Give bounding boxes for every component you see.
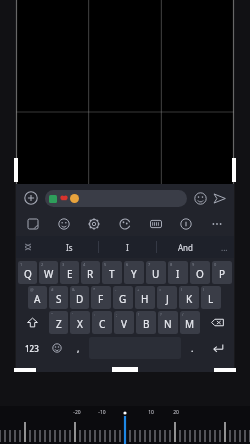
staticText: L [208,292,214,306]
button[interactable]: 5 [102,261,122,284]
button[interactable]: / [180,311,200,334]
button[interactable]: Shift [18,311,47,334]
button[interactable]: Theme [114,213,136,235]
button[interactable]: 4 [81,261,100,284]
button[interactable]: ! [136,311,156,334]
staticText: Y [131,267,137,281]
staticText: O [196,267,204,281]
button[interactable]: 9 [190,261,210,284]
staticText: 10 [148,409,154,416]
button[interactable]: Is [40,236,98,258]
button[interactable]: 6 [124,261,144,284]
button[interactable]: Emoji [53,213,75,235]
button[interactable]: ? [158,311,178,334]
button[interactable]: " [49,311,68,334]
button[interactable]: * [91,286,111,309]
staticText: I [176,267,180,281]
staticText: A [34,292,41,306]
staticText: . [191,342,194,354]
staticText: T [109,267,115,281]
button[interactable]: + [135,286,155,309]
button[interactable]: - [113,286,133,309]
button[interactable]: More options [206,213,228,235]
button[interactable]: Stickers [22,213,44,235]
button[interactable]: Emoji [191,189,209,207]
staticText: 123 [25,343,39,354]
staticText: ( [181,287,183,292]
button[interactable]: Expand suggestions [16,236,40,258]
staticText: * [93,287,96,292]
button[interactable]: More suggestions [214,236,234,258]
staticText: 2 [41,262,44,267]
button[interactable]: ; [114,311,134,334]
button[interactable]: = [157,286,177,309]
staticText: : [94,312,96,317]
staticText: 7 [148,262,151,267]
staticText: 0 [214,262,217,267]
staticText: J [166,292,169,306]
button[interactable]: ( [179,286,199,309]
staticText: 20 [173,409,179,416]
staticText: R [87,267,94,281]
button[interactable]: 123 [17,335,46,361]
staticText: Z [56,317,62,331]
staticText: And [178,242,193,253]
staticText: H [141,292,149,306]
button[interactable]: 2 [39,261,58,284]
staticText: " [51,312,53,317]
staticText: ; [116,312,118,317]
button[interactable]: : [92,311,112,334]
button[interactable]: @ [28,286,47,309]
staticText: ) [203,287,205,292]
button[interactable]: I [99,236,156,258]
staticText: N [164,317,172,331]
staticText: ! [138,312,140,317]
button[interactable]: GIF [145,213,167,235]
button[interactable]: # [49,286,68,309]
staticText: @ [30,287,34,292]
button[interactable]: And [157,236,214,258]
button[interactable]: Info [175,213,197,235]
button[interactable]: 1 [18,261,37,284]
staticText: 9 [192,262,195,267]
staticText: ? [160,312,162,317]
button[interactable]: ) [201,286,221,309]
button[interactable]: Period [182,335,202,361]
staticText: Q [24,267,32,281]
staticText: 4 [83,262,86,267]
button[interactable]: Enter [202,335,233,361]
button[interactable]: ' [70,311,90,334]
staticText: = [159,287,162,292]
button[interactable]: Settings [83,213,105,235]
button[interactable]: Send [209,188,229,208]
staticText: V [121,317,127,331]
staticText: U [152,267,160,281]
staticText: -10 [98,409,106,416]
staticText: & [72,287,75,292]
staticText: 8 [170,262,173,267]
button[interactable]: Add [21,188,41,208]
button[interactable]: 7 [146,261,166,284]
staticText: - [115,287,117,292]
staticText: -20 [73,409,81,416]
staticText: ... [221,242,228,253]
staticText: P [219,267,226,281]
staticText: W [44,267,54,281]
staticText: 5 [104,262,107,267]
button[interactable]: 0 [212,261,232,284]
staticText: K [186,292,193,306]
button[interactable]: & [70,286,89,309]
button[interactable]: 8 [168,261,188,284]
button[interactable]: Emoji keyboard [46,335,68,361]
button[interactable] [45,190,187,207]
staticText: S [56,292,62,306]
staticText: / [182,312,184,317]
button[interactable]: Comma [68,335,88,361]
button[interactable]: Backspace [202,311,232,334]
staticText: G [119,292,127,306]
button[interactable]: 3 [60,261,79,284]
staticText: E [67,267,73,281]
staticText: , [77,342,80,354]
staticText: + [137,287,140,292]
